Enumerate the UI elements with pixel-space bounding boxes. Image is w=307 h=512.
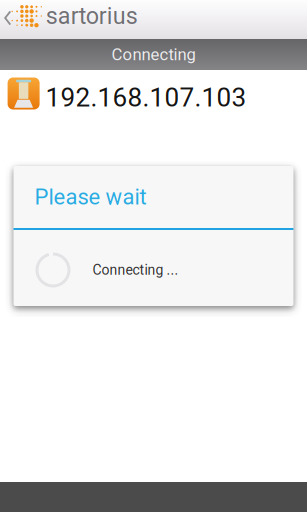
staticText: 192.168.107.103 [46,82,247,113]
staticText: sartorius [46,2,138,30]
staticText: Please wait [34,184,146,210]
staticText: Connecting ... [92,262,178,278]
staticText: Connecting [111,45,195,64]
button[interactable]: sartorius home [0,0,307,39]
